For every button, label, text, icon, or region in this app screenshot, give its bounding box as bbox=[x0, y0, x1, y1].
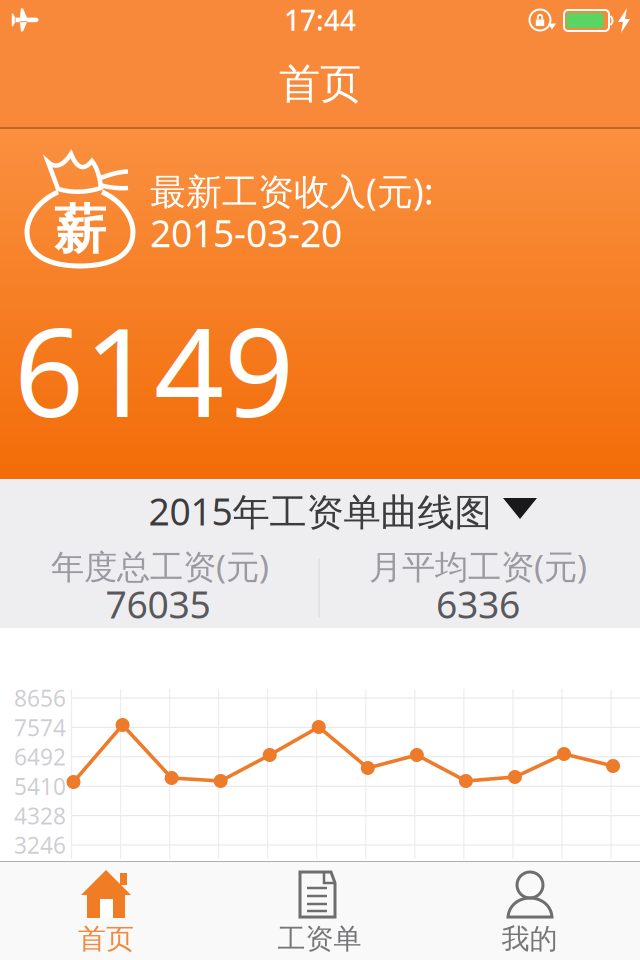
staticText: 首页 bbox=[78, 922, 134, 956]
button[interactable]: 我的 bbox=[426, 861, 640, 960]
staticText: 17:44 bbox=[284, 1, 356, 39]
staticText: 首页 bbox=[279, 59, 361, 109]
button[interactable]: 2015年工资单曲线图 bbox=[0, 481, 640, 539]
staticText: 2015-03-20 bbox=[150, 208, 342, 258]
staticText: 月平均工资(元) bbox=[369, 544, 587, 588]
staticText: 工资单 bbox=[277, 922, 361, 956]
staticText: 6492 bbox=[14, 742, 66, 772]
staticText: 最新工资收入(元): bbox=[150, 167, 434, 215]
staticText: 年度总工资(元) bbox=[51, 544, 269, 588]
staticText: 3246 bbox=[14, 830, 66, 860]
button[interactable]: 首页 bbox=[0, 861, 213, 960]
staticText: 6336 bbox=[436, 579, 520, 629]
staticText: 8656 bbox=[14, 683, 66, 713]
staticText: 76035 bbox=[105, 579, 210, 629]
button[interactable]: 工资单 bbox=[213, 861, 426, 960]
staticText: 5410 bbox=[14, 771, 66, 801]
staticText: 薪 bbox=[54, 198, 106, 262]
staticText: 4328 bbox=[14, 800, 66, 831]
staticText: 我的 bbox=[501, 922, 557, 956]
staticText: 7574 bbox=[14, 712, 66, 742]
staticText: 6149 bbox=[14, 288, 294, 451]
staticText: 2015年工资单曲线图 bbox=[148, 486, 491, 536]
